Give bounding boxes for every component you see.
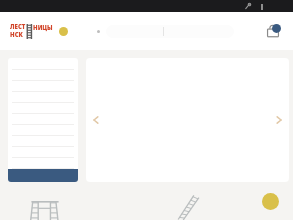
button[interactable]: Action [262,193,279,210]
button[interactable] [8,158,78,169]
button[interactable] [8,103,78,114]
button[interactable]: Next [271,112,287,128]
button[interactable]: Previous [88,112,104,128]
button[interactable] [8,147,78,158]
button[interactable] [8,114,78,125]
staticText: НСК [10,31,23,39]
staticText: НИЦЫ [33,24,53,32]
button[interactable] [8,92,78,103]
button[interactable] [8,136,78,147]
button[interactable]: Cart [263,21,283,41]
button[interactable] [8,58,78,70]
button[interactable] [8,169,78,182]
button[interactable] [8,70,78,81]
button[interactable] [8,81,78,92]
button[interactable] [8,125,78,136]
staticText: ЛЕСТ [10,23,26,31]
